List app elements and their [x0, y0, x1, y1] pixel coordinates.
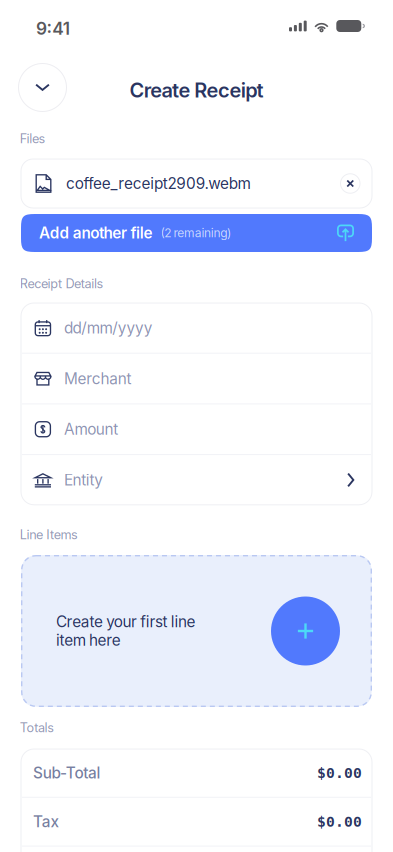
- staticText: 9:41: [36, 18, 70, 39]
- button[interactable]: Add line item: [271, 596, 340, 665]
- button[interactable]: Amount: [21, 404, 372, 454]
- staticText: Receipt Details: [20, 276, 104, 291]
- staticText: Create Receipt: [129, 78, 264, 102]
- staticText: Totals: [20, 720, 54, 735]
- staticText: Create your first line item here: [56, 612, 196, 649]
- staticText: dd/mm/yyyy: [64, 319, 153, 337]
- staticText: $0.00: [317, 764, 362, 781]
- staticText: coffee_receipt2909.webm: [66, 174, 250, 193]
- button[interactable]: Add another file: [21, 214, 372, 252]
- button[interactable]: Merchant: [21, 354, 372, 403]
- staticText: Entity: [64, 471, 103, 489]
- button[interactable]: Entity: [21, 455, 372, 505]
- staticText: Merchant: [64, 369, 131, 388]
- staticText: Tax: [33, 812, 59, 831]
- staticText: Line Items: [20, 527, 78, 542]
- staticText: (2 remaining): [160, 226, 231, 240]
- button[interactable]: Remove file: [340, 174, 360, 193]
- staticText: $0.00: [317, 813, 362, 830]
- button[interactable]: dd/mm/yyyy: [21, 303, 372, 353]
- staticText: Add another file: [39, 224, 152, 242]
- staticText: Files: [20, 131, 46, 146]
- staticText: Sub-Total: [33, 764, 101, 782]
- staticText: Amount: [64, 420, 118, 439]
- button[interactable]: Dismiss: [18, 63, 66, 111]
